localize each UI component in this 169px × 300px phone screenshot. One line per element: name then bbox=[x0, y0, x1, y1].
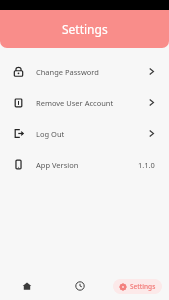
button[interactable]: App Version bbox=[0, 149, 169, 180]
button[interactable]: History bbox=[53, 281, 106, 291]
button[interactable]: Log Out bbox=[0, 118, 169, 149]
staticText: Remove User Account bbox=[36, 98, 114, 108]
staticText: Settings bbox=[130, 282, 156, 291]
staticText: Settings bbox=[62, 21, 108, 37]
button[interactable]: Home bbox=[0, 281, 53, 291]
button[interactable]: Settings bbox=[113, 279, 162, 294]
staticText: Change Password bbox=[36, 67, 99, 77]
staticText: 1.1.0 bbox=[138, 160, 155, 170]
button[interactable]: Remove User Account bbox=[0, 87, 169, 118]
button[interactable]: Change Password bbox=[0, 56, 169, 87]
staticText: App Version bbox=[36, 160, 79, 170]
staticText: Log Out bbox=[36, 129, 65, 139]
